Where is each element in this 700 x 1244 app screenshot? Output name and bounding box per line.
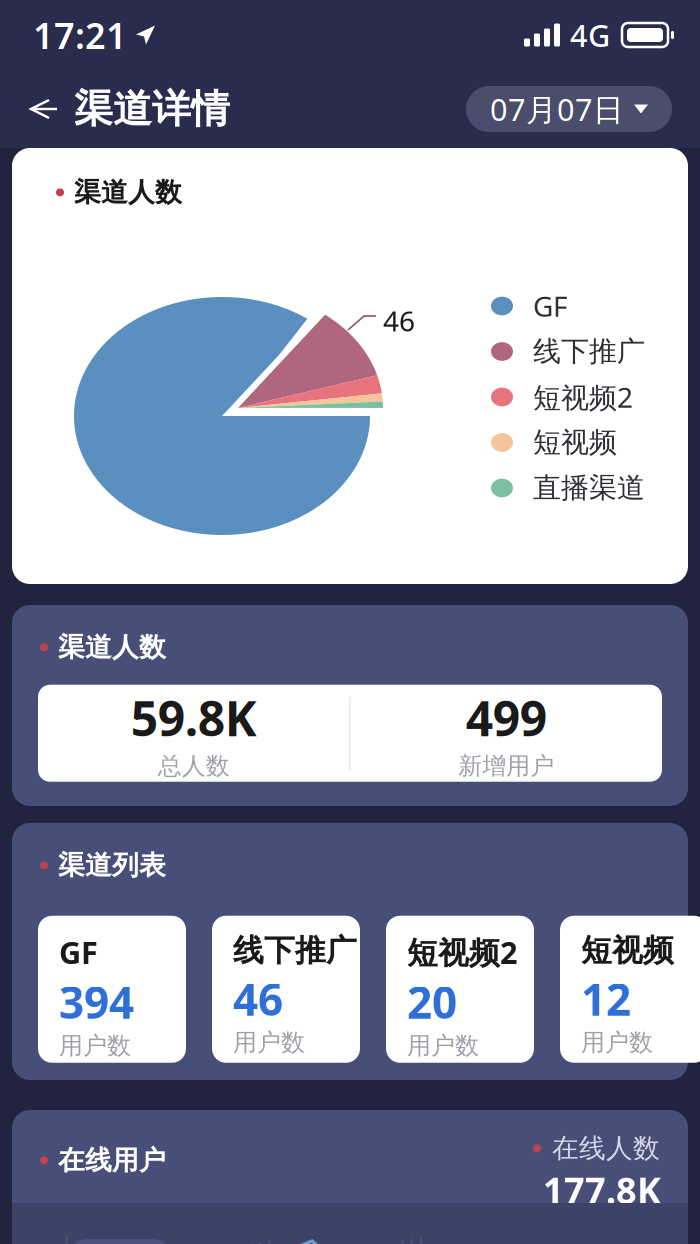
staticText: 394 — [59, 972, 134, 1031]
staticText: 20 — [407, 972, 457, 1031]
staticText: 新增用户 — [458, 751, 554, 781]
staticText: 46 — [233, 969, 283, 1028]
staticText: 渠道详情 — [74, 85, 230, 133]
staticText: 46 — [383, 302, 415, 339]
staticText: 线下推广 — [233, 932, 357, 969]
staticText: 177.8K — [543, 1166, 661, 1214]
staticText: 渠道列表 — [58, 849, 166, 882]
staticText: 12 — [581, 969, 631, 1028]
staticText: 渠道人数 — [74, 176, 182, 209]
staticText: 短视频2 — [533, 378, 633, 416]
staticText: 在线用户 — [58, 1144, 166, 1177]
button[interactable]: 线下推广 — [212, 916, 360, 1063]
staticText: 短视频2 — [407, 932, 518, 972]
staticText: 17:21 — [33, 11, 127, 59]
button[interactable]: 返回 — [14, 82, 68, 136]
staticText: 在线人数 — [552, 1132, 660, 1165]
staticText: 渠道人数 — [58, 631, 166, 664]
staticText: 总人数 — [158, 751, 230, 781]
staticText: 用户数 — [407, 1031, 479, 1060]
staticText: 短视频 — [581, 932, 674, 969]
button[interactable]: 07月07日 — [466, 86, 672, 132]
button[interactable]: 短视频 — [560, 916, 700, 1063]
staticText: 07月07日 — [490, 89, 624, 129]
button[interactable]: 短视频2 — [386, 916, 534, 1063]
staticText: 短视频 — [533, 425, 617, 460]
staticText: GF — [533, 287, 568, 325]
staticText: 499 — [466, 686, 547, 749]
staticText: 线下推广 — [533, 334, 645, 369]
button[interactable]: GF — [38, 916, 186, 1063]
staticText: 59.8K — [131, 686, 257, 749]
staticText: 4G — [570, 15, 610, 55]
staticText: 用户数 — [581, 1028, 653, 1057]
staticText: 用户数 — [59, 1031, 131, 1060]
staticText: 用户数 — [233, 1028, 305, 1057]
staticText: GF — [59, 932, 98, 972]
staticText: 直播渠道 — [533, 471, 645, 505]
